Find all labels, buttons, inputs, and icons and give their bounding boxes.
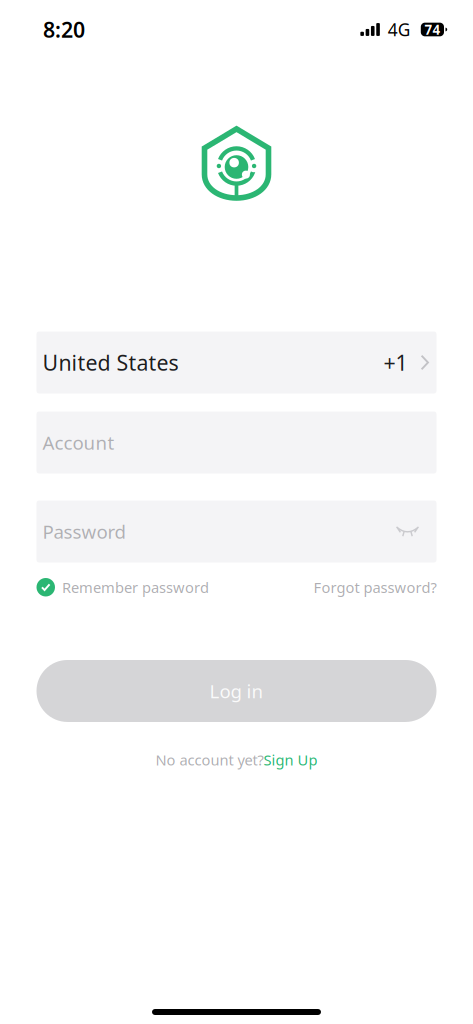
button[interactable]: Forgot password? [313, 577, 436, 597]
staticText: Password [42, 519, 125, 544]
staticText: 8:20 [43, 15, 85, 44]
staticText: Account [42, 430, 114, 455]
staticText: 74 [424, 21, 440, 38]
staticText: United States [42, 348, 178, 377]
staticText: 4G [388, 18, 411, 41]
staticText: +1 [384, 348, 408, 377]
staticText: Remember password [62, 577, 209, 597]
staticText: No account yet? [155, 750, 263, 769]
staticText: Sign Up [263, 750, 317, 769]
button[interactable]: United States [36, 331, 436, 393]
button[interactable]: Remember password [36, 577, 209, 597]
button[interactable]: Log in [36, 660, 436, 722]
button[interactable]: Sign Up [263, 750, 317, 769]
staticText: Log in [209, 679, 263, 703]
button[interactable]: Show password [385, 511, 429, 551]
staticText: Forgot password? [313, 577, 436, 597]
